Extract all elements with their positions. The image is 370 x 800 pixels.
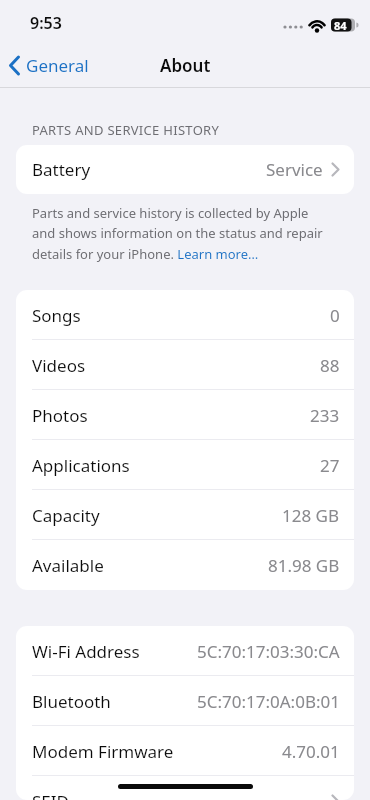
staticText: Parts and service history is collected b… [32, 204, 323, 263]
staticText: About [160, 54, 211, 77]
staticText: Videos [32, 354, 86, 377]
button[interactable]: Photos [16, 390, 354, 440]
button[interactable]: General [8, 54, 89, 77]
staticText: SEID [32, 790, 69, 800]
staticText: 233 [310, 404, 340, 427]
button[interactable]: Wi-Fi Address [16, 626, 354, 676]
staticText: Service [266, 158, 323, 181]
staticText: Songs [32, 304, 81, 327]
staticText: PARTS AND SERVICE HISTORY [32, 121, 220, 139]
staticText: 84 [334, 18, 347, 32]
staticText: General [26, 54, 89, 77]
button[interactable]: Modem Firmware [16, 726, 354, 776]
staticText: Wi-Fi Address [32, 640, 140, 663]
button[interactable]: Bluetooth [16, 676, 354, 726]
staticText: 5C:70:17:0A:0B:01 [197, 690, 340, 713]
staticText: Photos [32, 404, 88, 427]
staticText: Modem Firmware [32, 740, 174, 763]
staticText: 5C:70:17:03:30:CA [197, 640, 340, 663]
button[interactable]: Capacity [16, 490, 354, 540]
button[interactable]: Battery [16, 145, 354, 194]
staticText: Battery [32, 158, 91, 181]
button[interactable]: Videos [16, 340, 354, 390]
staticText: 0 [330, 304, 340, 327]
staticText: 81.98 GB [268, 554, 340, 577]
staticText: 9:53 [30, 12, 62, 34]
staticText: Available [32, 554, 104, 577]
staticText: Capacity [32, 504, 100, 527]
button[interactable]: SEID [16, 776, 354, 800]
staticText: 27 [320, 454, 340, 477]
staticText: Applications [32, 454, 130, 477]
button[interactable]: Applications [16, 440, 354, 490]
staticText: Bluetooth [32, 690, 111, 713]
button[interactable]: Available [16, 540, 354, 590]
staticText: 4.70.01 [282, 740, 340, 763]
staticText: 128 GB [282, 504, 340, 527]
staticText: 88 [320, 354, 340, 377]
button[interactable]: Songs [16, 290, 354, 340]
